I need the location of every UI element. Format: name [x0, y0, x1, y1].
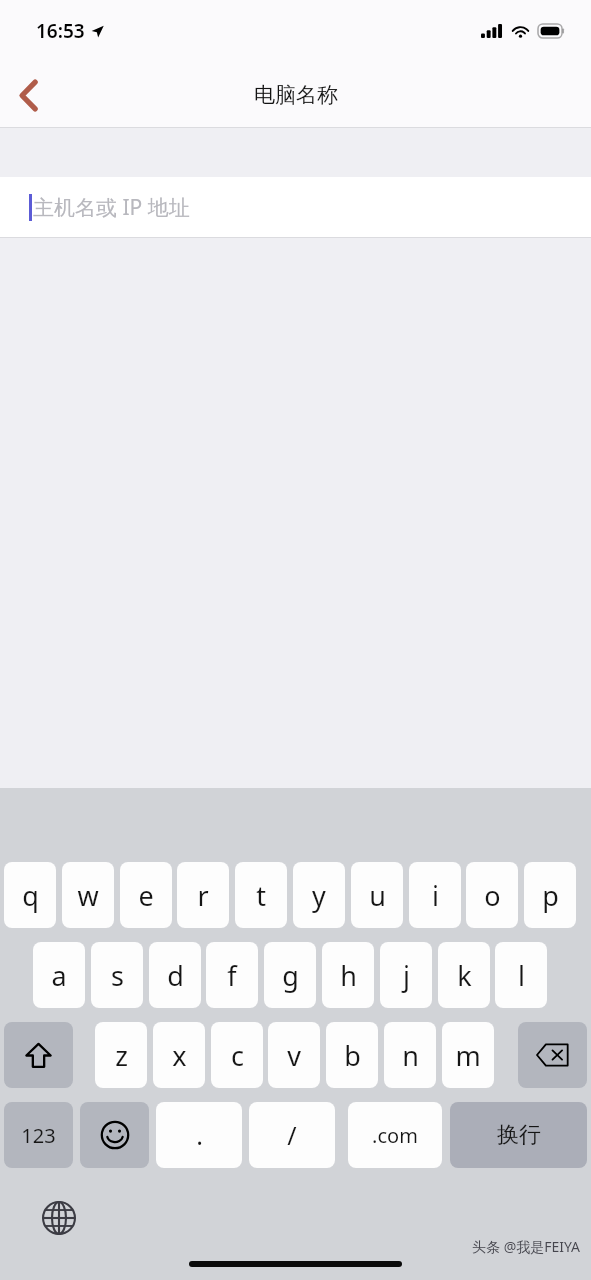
staticText: 换行: [497, 1121, 541, 1149]
staticText: 16:53: [36, 18, 85, 44]
staticText: e: [138, 877, 154, 914]
button[interactable]: h: [322, 942, 374, 1008]
button[interactable]: f: [206, 942, 258, 1008]
button[interactable]: r: [177, 862, 229, 928]
staticText: q: [22, 877, 39, 914]
button[interactable]: a: [33, 942, 85, 1008]
staticText: /: [287, 1118, 297, 1152]
staticText: g: [282, 957, 299, 994]
button[interactable]: j: [380, 942, 432, 1008]
staticText: k: [457, 957, 472, 994]
staticText: o: [484, 877, 501, 914]
staticText: i: [432, 877, 439, 914]
staticText: v: [287, 1037, 301, 1074]
staticText: y: [312, 877, 326, 914]
staticText: 电脑名称: [254, 82, 338, 108]
button[interactable]: u: [351, 862, 403, 928]
staticText: 头条 @我是FEIYA: [472, 1237, 581, 1256]
staticText: w: [77, 877, 99, 914]
button[interactable]: b: [326, 1022, 378, 1088]
button[interactable]: Back: [0, 65, 56, 125]
staticText: .com: [372, 1122, 418, 1149]
button[interactable]: m: [442, 1022, 494, 1088]
button[interactable]: 123: [4, 1102, 73, 1168]
button[interactable]: 主机名或 IP 地址: [0, 177, 591, 238]
staticText: b: [344, 1037, 361, 1074]
button[interactable]: Backspace: [518, 1022, 587, 1088]
staticText: f: [227, 957, 237, 994]
staticText: t: [256, 877, 266, 914]
staticText: a: [51, 957, 67, 994]
button[interactable]: t: [235, 862, 287, 928]
staticText: h: [340, 957, 357, 994]
button[interactable]: .: [156, 1102, 242, 1168]
button[interactable]: g: [264, 942, 316, 1008]
staticText: p: [542, 877, 559, 914]
staticText: x: [172, 1037, 187, 1074]
button[interactable]: Shift: [4, 1022, 73, 1088]
button[interactable]: d: [149, 942, 201, 1008]
staticText: s: [111, 957, 124, 994]
staticText: r: [197, 877, 209, 914]
button[interactable]: 换行: [450, 1102, 587, 1168]
button[interactable]: .com: [348, 1102, 442, 1168]
button[interactable]: k: [438, 942, 490, 1008]
staticText: l: [518, 957, 525, 994]
staticText: j: [403, 957, 410, 994]
staticText: 主机名或 IP 地址: [33, 193, 190, 222]
button[interactable]: y: [293, 862, 345, 928]
button[interactable]: w: [62, 862, 114, 928]
staticText: d: [167, 957, 184, 994]
button[interactable]: /: [249, 1102, 335, 1168]
staticText: n: [402, 1037, 419, 1074]
button[interactable]: v: [268, 1022, 320, 1088]
button[interactable]: s: [91, 942, 143, 1008]
staticText: u: [369, 877, 386, 914]
staticText: c: [231, 1037, 244, 1074]
button[interactable]: p: [524, 862, 576, 928]
button[interactable]: e: [120, 862, 172, 928]
staticText: .: [196, 1118, 203, 1152]
button[interactable]: o: [466, 862, 518, 928]
button[interactable]: Switch keyboard: [37, 1196, 81, 1240]
button[interactable]: q: [4, 862, 56, 928]
button[interactable]: x: [153, 1022, 205, 1088]
button[interactable]: c: [211, 1022, 263, 1088]
button[interactable]: i: [409, 862, 461, 928]
staticText: 123: [21, 1122, 56, 1149]
button[interactable]: z: [95, 1022, 147, 1088]
button[interactable]: n: [384, 1022, 436, 1088]
staticText: m: [455, 1037, 481, 1074]
button[interactable]: Emoji: [80, 1102, 149, 1168]
button[interactable]: l: [495, 942, 547, 1008]
staticText: z: [115, 1037, 128, 1074]
